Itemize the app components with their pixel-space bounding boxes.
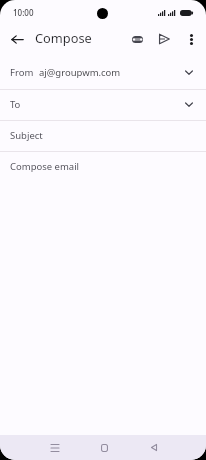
- button[interactable]: Subject: [0, 121, 206, 152]
- button[interactable]: More options: [179, 27, 203, 51]
- button[interactable]: To: [0, 90, 206, 121]
- button[interactable]: From: [0, 56, 206, 90]
- staticText: Compose email: [10, 160, 80, 173]
- button[interactable]: Back: [142, 435, 166, 460]
- staticText: aj@groupwm.com: [39, 66, 121, 79]
- button[interactable]: Back: [5, 27, 29, 51]
- button[interactable]: Attach file: [125, 27, 149, 51]
- button[interactable]: Recent apps: [43, 435, 67, 460]
- button[interactable]: Compose email: [0, 152, 206, 430]
- staticText: Compose: [35, 29, 92, 46]
- staticText: To: [10, 98, 21, 111]
- staticText: From: [10, 66, 34, 79]
- button[interactable]: Send: [152, 27, 176, 51]
- staticText: 10:00: [13, 7, 34, 18]
- button[interactable]: Home: [92, 435, 116, 460]
- staticText: Subject: [10, 129, 43, 142]
